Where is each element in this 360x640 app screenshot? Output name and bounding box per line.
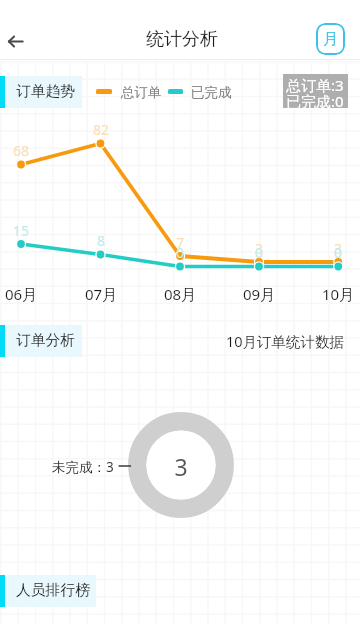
staticText: 总订单:3 (286, 75, 344, 95)
staticText: 总订单 (121, 84, 162, 101)
staticText: 82 (89, 120, 113, 139)
staticText: 8 (89, 231, 113, 250)
staticText: 0 (168, 243, 192, 262)
button[interactable]: 订单分析 (0, 325, 82, 357)
staticText: 68 (9, 141, 33, 160)
staticText: 已完成:0 (286, 91, 344, 111)
staticText: 3 (247, 239, 271, 258)
staticText: 已完成 (191, 84, 232, 101)
staticText: 订单分析 (16, 331, 76, 350)
staticText: 10月订单统计数据 (226, 331, 345, 351)
staticText: 08月 (158, 284, 202, 304)
staticText: 10月 (316, 284, 360, 304)
staticText: 06月 (0, 284, 43, 304)
staticText: 7 (168, 233, 192, 252)
staticText: 0 (247, 243, 271, 262)
staticText: 人员排行榜 (16, 581, 90, 600)
staticText: 月 (323, 30, 338, 49)
button[interactable]: Back (2, 26, 30, 54)
staticText: 09月 (237, 284, 281, 304)
staticText: 3 (326, 239, 350, 258)
button[interactable]: 月 (316, 23, 345, 55)
staticText: 3 (172, 451, 190, 482)
staticText: 0 (326, 243, 350, 262)
staticText: 07月 (79, 284, 123, 304)
staticText: 订单趋势 (16, 82, 76, 101)
staticText: 统计分析 (146, 28, 218, 51)
staticText: 15 (9, 221, 33, 240)
staticText: 未完成：3 (52, 458, 114, 476)
button[interactable]: 人员排行榜 (0, 575, 96, 607)
button[interactable]: 订单趋势 (0, 76, 82, 108)
